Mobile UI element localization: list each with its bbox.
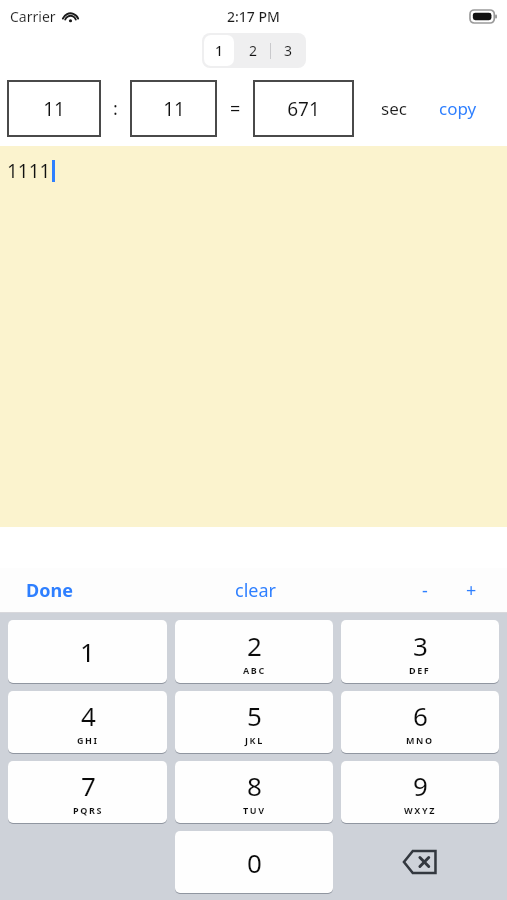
staticText: 1111: [7, 158, 51, 184]
button[interactable]: 4: [8, 691, 167, 753]
button[interactable]: 3: [341, 620, 499, 683]
staticText: -: [422, 578, 428, 603]
staticText: 7: [81, 768, 96, 803]
staticText: sec: [381, 97, 407, 120]
button[interactable]: 0: [175, 831, 333, 893]
staticText: Done: [26, 578, 73, 603]
staticText: 2: [249, 41, 258, 60]
button[interactable]: 2: [236, 33, 270, 68]
staticText: PQRS: [73, 804, 103, 816]
staticText: GHI: [77, 734, 99, 746]
staticText: 1: [215, 41, 224, 60]
button[interactable]: 9: [341, 761, 499, 823]
button[interactable]: Done: [18, 572, 81, 609]
button[interactable]: 11: [7, 80, 101, 137]
staticText: =: [230, 96, 241, 121]
button[interactable]: clear: [227, 572, 284, 609]
staticText: 4: [81, 698, 96, 733]
staticText: 8: [247, 768, 262, 803]
staticText: 2:17 PM: [227, 7, 280, 26]
staticText: JKL: [245, 734, 264, 746]
button[interactable]: copy: [435, 93, 481, 124]
staticText: 5: [247, 698, 262, 733]
button[interactable]: 6: [341, 691, 499, 753]
button[interactable]: 11: [130, 80, 217, 137]
button[interactable]: -: [412, 572, 438, 609]
button[interactable]: 7: [8, 761, 167, 823]
button[interactable]: +: [458, 572, 485, 609]
staticText: 2: [247, 628, 262, 663]
staticText: WXYZ: [404, 804, 436, 816]
staticText: 6: [413, 698, 428, 733]
staticText: 3: [284, 41, 293, 60]
staticText: 11: [163, 96, 185, 122]
staticText: DEF: [409, 664, 431, 676]
staticText: MNO: [406, 734, 434, 746]
button[interactable]: 1: [8, 620, 167, 683]
staticText: 11: [43, 96, 65, 122]
staticText: +: [466, 578, 477, 603]
button[interactable]: 3: [271, 33, 306, 68]
staticText: 0: [247, 845, 262, 880]
button[interactable]: 1111: [0, 146, 507, 527]
staticText: 3: [413, 628, 428, 663]
button[interactable]: 671: [253, 80, 354, 137]
button[interactable]: 5: [175, 691, 333, 753]
staticText: Carrier: [10, 7, 56, 26]
button[interactable]: 8: [175, 761, 333, 823]
staticText: 1: [80, 634, 95, 669]
button[interactable]: 1: [204, 35, 234, 66]
button[interactable]: Delete: [341, 831, 499, 893]
staticText: ABC: [243, 664, 266, 676]
button[interactable]: 2: [175, 620, 333, 683]
staticText: :: [113, 96, 118, 121]
staticText: clear: [235, 578, 276, 603]
staticText: TUV: [243, 804, 266, 816]
staticText: 9: [413, 768, 428, 803]
staticText: copy: [439, 97, 477, 120]
staticText: 671: [287, 96, 320, 122]
